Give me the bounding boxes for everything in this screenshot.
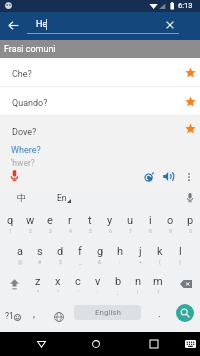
button[interactable]: n (128, 267, 148, 299)
button[interactable]: o (160, 206, 180, 238)
button[interactable]: q (0, 206, 20, 238)
staticText: m (153, 275, 163, 288)
button[interactable]: z (28, 267, 48, 299)
button[interactable]: Back (30, 333, 52, 355)
staticText: p (187, 214, 194, 227)
staticText: x (55, 275, 61, 288)
button[interactable]: Home (85, 333, 107, 355)
button[interactable]: g (90, 237, 110, 269)
button[interactable]: y (100, 206, 120, 238)
staticText: u (127, 214, 134, 227)
button[interactable]: Dove? (0, 116, 200, 142)
button[interactable]: Add to favourites (182, 64, 198, 80)
staticText: * (37, 289, 40, 295)
staticText: , (33, 308, 35, 320)
button[interactable]: Add to favourites (182, 120, 198, 136)
staticText: 6:13 (178, 1, 193, 10)
staticText: & (98, 259, 102, 265)
button[interactable]: Clear query (160, 15, 180, 35)
button[interactable]: k (150, 237, 170, 269)
staticText: ( (159, 259, 161, 265)
button[interactable]: v (88, 267, 108, 299)
staticText: Che? (12, 69, 32, 80)
staticText: q (7, 214, 14, 227)
button[interactable]: Add to favourites (182, 93, 198, 109)
button[interactable]: More options (181, 169, 196, 184)
button[interactable]: j (130, 237, 150, 269)
staticText: j (139, 245, 142, 258)
staticText: 9 (169, 228, 172, 234)
staticText: a (17, 245, 23, 258)
button[interactable]: e (40, 206, 60, 238)
staticText: w (26, 214, 35, 227)
button[interactable]: Che? (0, 58, 200, 87)
button[interactable]: t (80, 206, 100, 238)
staticText: English (95, 308, 121, 317)
button[interactable]: u (120, 206, 140, 238)
button[interactable]: l (170, 237, 190, 269)
staticText: f (78, 245, 82, 258)
staticText: . (158, 308, 161, 320)
staticText: r (68, 214, 72, 227)
button[interactable]: . (150, 302, 168, 332)
staticText: o (167, 214, 174, 227)
button[interactable]: Recent apps (143, 333, 165, 355)
staticText: t (88, 214, 92, 227)
staticText: + (139, 259, 142, 265)
button[interactable]: s (30, 237, 50, 269)
button[interactable]: Quando? (0, 87, 200, 116)
staticText: Quando? (12, 98, 48, 109)
staticText: _ (79, 259, 82, 265)
staticText: 2 (29, 228, 32, 234)
staticText: ) (179, 259, 181, 265)
button[interactable]: Switch keyboard (179, 333, 200, 355)
staticText: ; (117, 289, 119, 295)
button[interactable]: w (20, 206, 40, 238)
button[interactable]: c (68, 267, 88, 299)
staticText: 8 (149, 228, 152, 234)
staticText: y (107, 214, 113, 227)
button[interactable]: h (110, 237, 130, 269)
button[interactable]: English (74, 305, 141, 320)
staticText: $ (59, 259, 62, 265)
staticText: 中 (17, 192, 26, 203)
staticText: : (97, 289, 99, 295)
button[interactable]: ?1 (0, 302, 26, 332)
staticText: n (135, 275, 142, 288)
button[interactable]: Backspace (173, 268, 199, 300)
button[interactable]: a (10, 237, 30, 269)
staticText: # (38, 259, 42, 265)
staticText: 5 (89, 228, 92, 234)
staticText: b (115, 275, 122, 288)
button[interactable]: Change keyboard language (48, 302, 70, 332)
staticText: En (57, 193, 67, 203)
staticText: - (119, 259, 121, 265)
staticText: d (57, 245, 64, 258)
button[interactable]: i (140, 206, 160, 238)
staticText: 6 (109, 228, 112, 234)
staticText: c (75, 275, 81, 288)
button[interactable]: x (48, 267, 68, 299)
button[interactable]: r (60, 206, 80, 238)
staticText: ! (137, 289, 139, 295)
staticText: k (157, 245, 163, 258)
staticText: 1 (9, 228, 12, 234)
staticText: g (97, 245, 104, 258)
button[interactable]: , (26, 302, 42, 332)
staticText: ' (78, 289, 79, 295)
button[interactable]: Navigate up (2, 14, 24, 36)
button[interactable]: m (148, 267, 168, 299)
button[interactable]: Listen (161, 169, 176, 184)
button[interactable]: Conversation mode (141, 169, 156, 184)
button[interactable]: Speak (8, 169, 21, 182)
button[interactable]: d (50, 237, 70, 269)
staticText: 7 (129, 228, 132, 234)
staticText: Frasi comuni (4, 44, 56, 55)
button[interactable]: Search (176, 304, 194, 322)
button[interactable]: f (70, 237, 90, 269)
button[interactable]: p (180, 206, 200, 238)
button[interactable]: b (108, 267, 128, 299)
button[interactable]: Voice input (184, 191, 196, 203)
staticText: He (36, 19, 48, 30)
button[interactable]: Shift (0, 269, 28, 301)
